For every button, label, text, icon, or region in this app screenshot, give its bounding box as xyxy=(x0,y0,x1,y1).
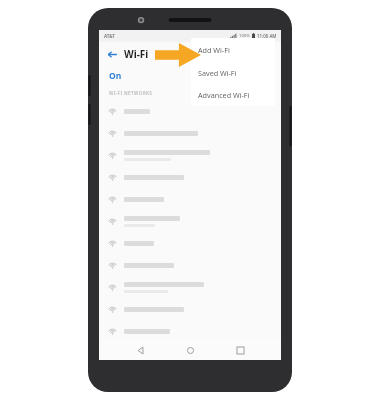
button[interactable]: Recent apps xyxy=(231,341,249,359)
staticText: Advanced Wi-Fi xyxy=(198,90,250,100)
button[interactable]: Add Wi-Fi xyxy=(191,38,275,61)
staticText: AT&T xyxy=(104,33,115,39)
button[interactable] xyxy=(99,276,281,298)
staticText: 100% xyxy=(239,33,250,39)
button[interactable] xyxy=(99,100,281,122)
button[interactable] xyxy=(99,122,281,144)
button[interactable] xyxy=(99,166,281,188)
button[interactable] xyxy=(99,232,281,254)
button[interactable] xyxy=(99,188,281,210)
staticText: 11:00 AM xyxy=(257,33,277,39)
button[interactable] xyxy=(99,254,281,276)
staticText: Add Wi-Fi xyxy=(198,45,230,55)
button[interactable]: Back xyxy=(105,42,151,66)
button[interactable]: Home xyxy=(181,341,199,359)
button[interactable] xyxy=(99,144,281,166)
button[interactable] xyxy=(99,210,281,232)
staticText: Saved Wi-Fi xyxy=(198,68,237,78)
button[interactable] xyxy=(99,320,281,342)
staticText: WI-FI NETWORKS xyxy=(109,90,153,96)
button[interactable]: On xyxy=(105,68,126,84)
button[interactable]: Back xyxy=(131,341,149,359)
button[interactable] xyxy=(99,298,281,320)
button[interactable]: Advanced Wi-Fi xyxy=(191,84,275,106)
staticText: Wi-Fi xyxy=(124,47,149,61)
button[interactable]: Saved Wi-Fi xyxy=(191,61,275,84)
staticText: On xyxy=(109,70,122,82)
